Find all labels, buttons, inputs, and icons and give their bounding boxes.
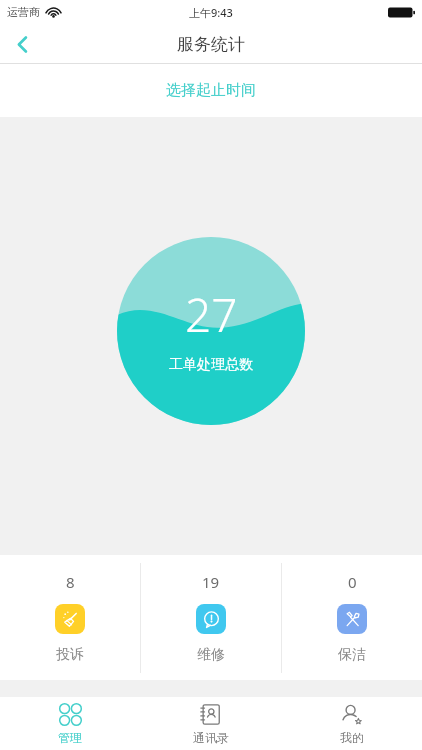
staticText: 服务统计 xyxy=(177,34,245,55)
staticText: 投诉 xyxy=(56,646,84,664)
staticText: 工单处理总数 xyxy=(169,356,253,374)
staticText: 管理 xyxy=(58,730,82,745)
staticText: 19 xyxy=(202,572,220,592)
staticText: 我的 xyxy=(340,730,364,745)
button[interactable]: 选择起止时间 xyxy=(0,64,422,117)
button[interactable]: 通讯录 xyxy=(140,697,281,750)
staticText: 运营商 xyxy=(7,5,40,19)
button[interactable]: Back xyxy=(0,24,44,64)
button[interactable]: 管理 xyxy=(0,697,140,750)
button[interactable]: 19 xyxy=(141,555,281,680)
staticText: 保洁 xyxy=(338,646,366,664)
staticText: 维修 xyxy=(197,646,225,664)
button[interactable]: 8 xyxy=(0,555,140,680)
staticText: 通讯录 xyxy=(193,730,229,745)
button[interactable]: 0 xyxy=(282,555,422,680)
staticText: 选择起止时间 xyxy=(166,81,256,100)
staticText: 上午9:43 xyxy=(189,5,233,20)
button[interactable]: 我的 xyxy=(281,697,422,750)
staticText: 0 xyxy=(348,572,357,592)
staticText: 27 xyxy=(185,283,238,346)
staticText: 8 xyxy=(66,572,75,592)
